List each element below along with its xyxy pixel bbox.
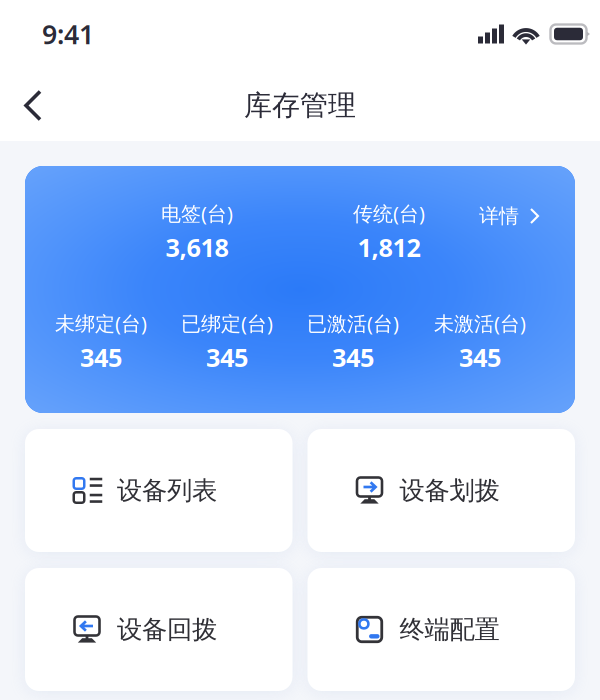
button[interactable]: 设备列表 [25,429,292,552]
button[interactable]: 终端配置 [307,568,575,691]
staticText: 终端配置 [399,614,499,645]
staticText: 345 [80,340,122,374]
button[interactable]: 设备回拨 [25,568,292,691]
staticText: 设备划拨 [399,475,499,506]
staticText: 9:41 [42,16,94,52]
staticText: 345 [332,340,374,374]
staticText: 未激活(台) [434,310,526,336]
staticText: 设备列表 [117,475,217,506]
staticText: 详情 [479,204,519,228]
staticText: 345 [459,340,501,374]
staticText: 设备回拨 [117,614,217,645]
staticText: 传统(台) [353,200,425,226]
staticText: 未绑定(台) [55,310,147,336]
staticText: 1,812 [357,230,420,264]
staticText: 电签(台) [161,200,233,226]
staticText: 已绑定(台) [181,310,273,336]
staticText: 3,618 [165,230,228,264]
staticText: 345 [206,340,248,374]
staticText: 库存管理 [244,88,356,123]
button[interactable]: 详情 [462,194,556,238]
button[interactable]: Back [8,75,58,135]
staticText: 已激活(台) [307,310,399,336]
button[interactable]: 设备划拨 [307,429,575,552]
